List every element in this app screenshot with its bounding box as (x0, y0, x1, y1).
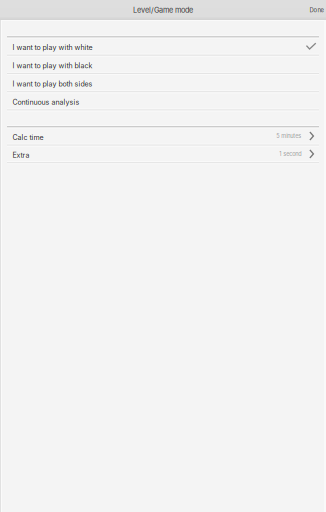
button[interactable]: Continuous analysis (0, 93, 326, 108)
staticText: I want to play both sides (12, 80, 92, 88)
button[interactable]: I want to play with black (0, 57, 326, 72)
staticText: Extra (12, 151, 29, 159)
staticText: Done (309, 6, 323, 14)
button[interactable]: Done (309, 0, 326, 20)
staticText: 1 second (279, 150, 301, 157)
button[interactable]: Calc time (0, 128, 326, 144)
button[interactable]: I want to play with white (0, 38, 326, 54)
staticText: I want to play with black (12, 61, 92, 70)
staticText: I want to play with white (12, 43, 92, 52)
button[interactable]: I want to play both sides (0, 75, 326, 90)
button[interactable]: Extra (0, 147, 326, 161)
staticText: Continuous analysis (12, 98, 79, 106)
staticText: Calc time (12, 133, 43, 142)
staticText: Level/Game mode (133, 6, 193, 14)
staticText: 5 minutes (276, 133, 301, 139)
